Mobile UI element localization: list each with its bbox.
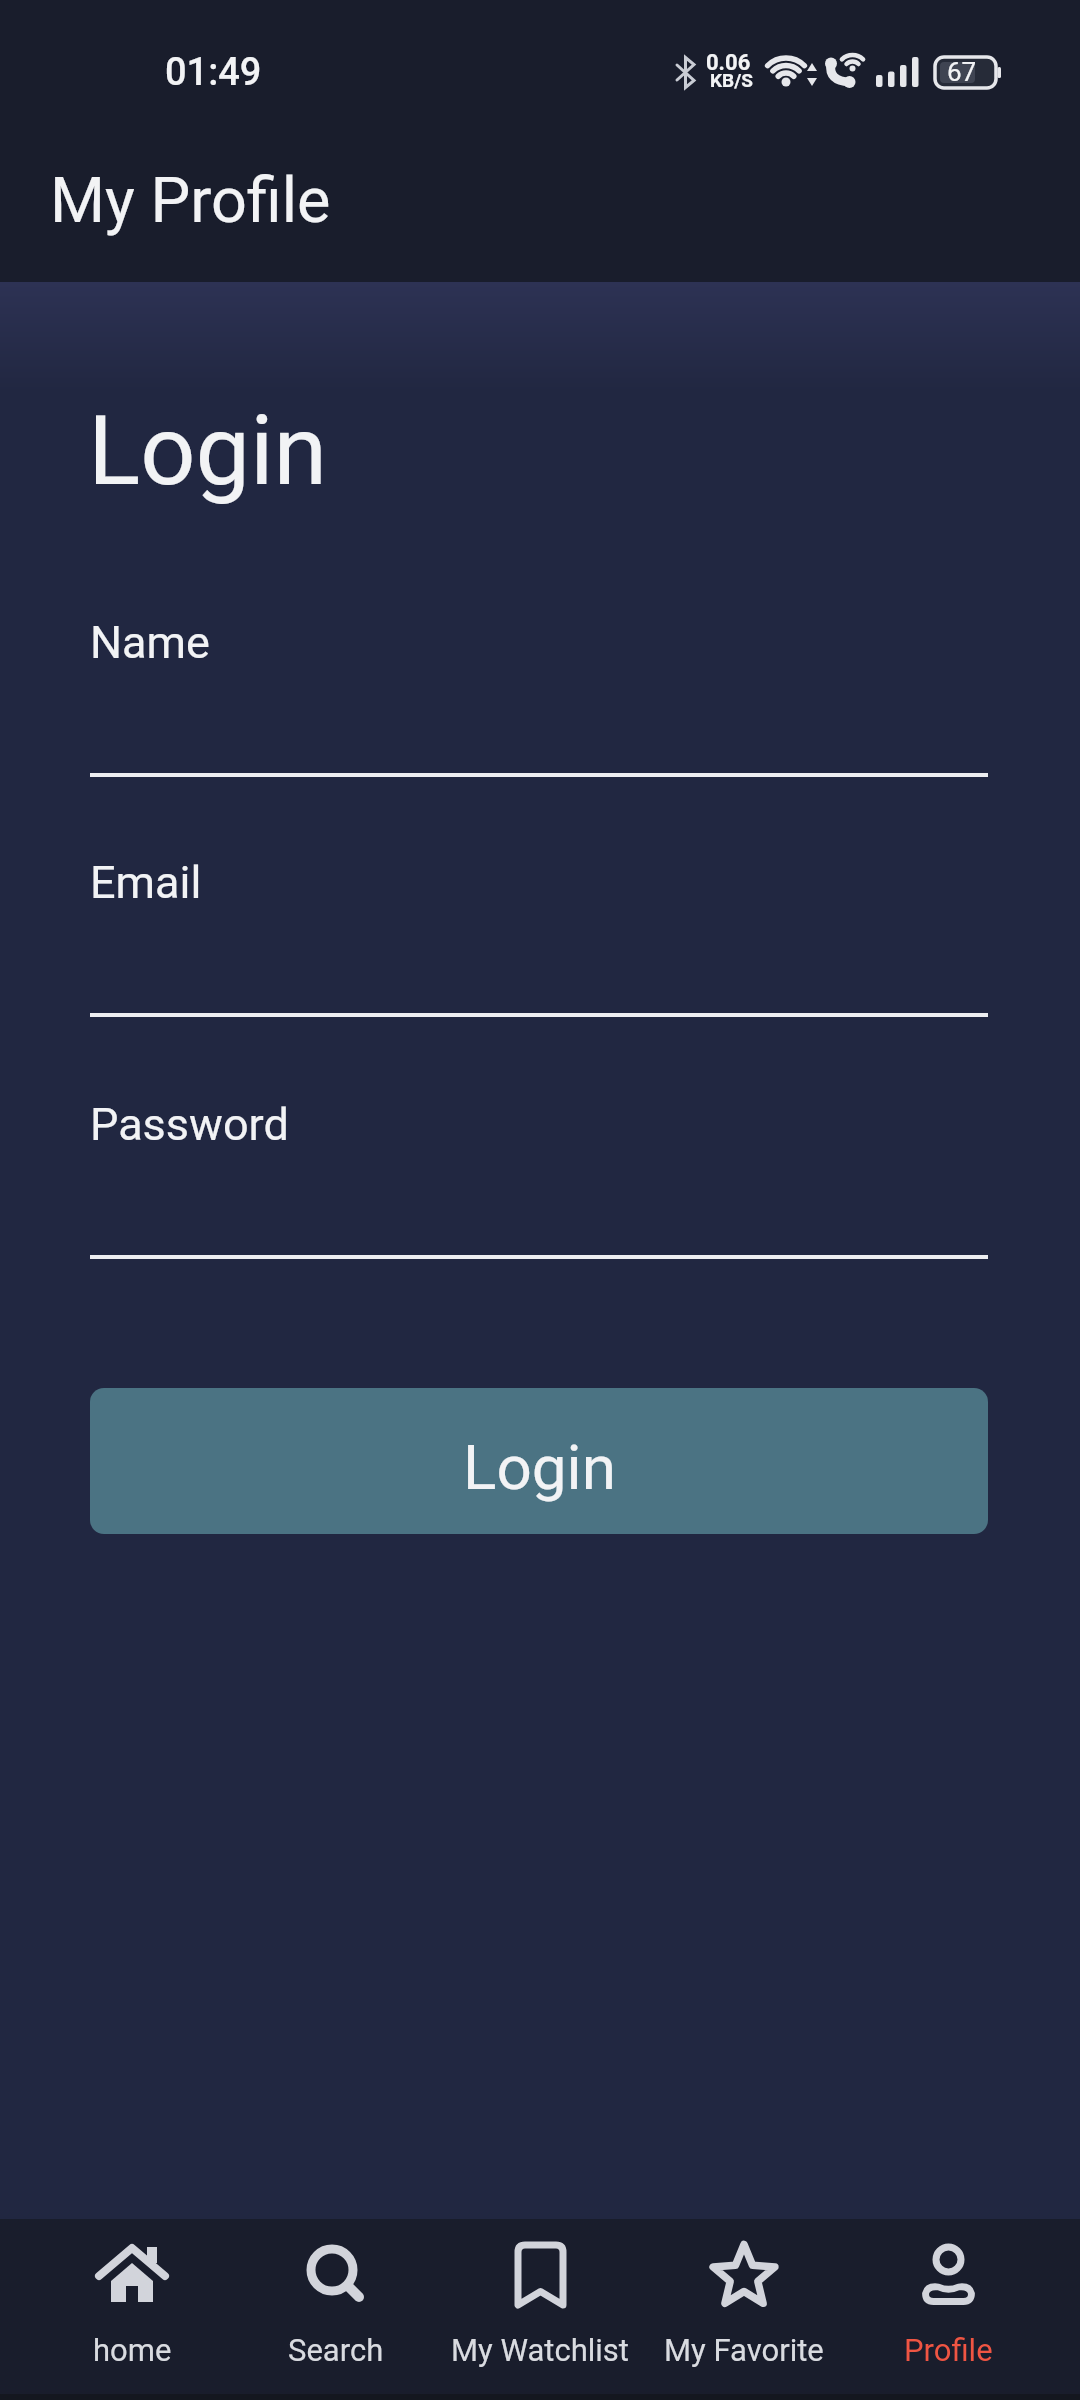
staticText: Login — [88, 394, 328, 508]
button[interactable]: Email — [90, 856, 988, 1017]
staticText: 01:49 — [165, 50, 262, 95]
staticText: home — [93, 2332, 172, 2368]
button[interactable]: My Favorite — [642, 2219, 846, 2400]
staticText: My Watchlist — [451, 2332, 629, 2368]
button[interactable]: Password — [90, 1098, 988, 1259]
staticText: 0.06 — [706, 50, 751, 76]
staticText: My Profile — [50, 164, 331, 238]
staticText: Profile — [904, 2332, 993, 2368]
button[interactable]: Login — [90, 1388, 988, 1534]
button[interactable]: Name — [90, 616, 988, 777]
staticText: KB/S — [710, 69, 753, 91]
staticText: Email — [90, 856, 202, 909]
staticText: Password — [90, 1098, 289, 1151]
staticText: My Favorite — [664, 2332, 824, 2368]
staticText: 67 — [947, 57, 977, 87]
button[interactable]: Profile — [846, 2219, 1050, 2400]
staticText: Search — [288, 2332, 384, 2368]
staticText: Name — [90, 616, 210, 669]
button[interactable]: My Watchlist — [438, 2219, 642, 2400]
staticText: Login — [463, 1431, 616, 1504]
button[interactable]: home — [30, 2219, 234, 2400]
button[interactable]: Search — [234, 2219, 438, 2400]
